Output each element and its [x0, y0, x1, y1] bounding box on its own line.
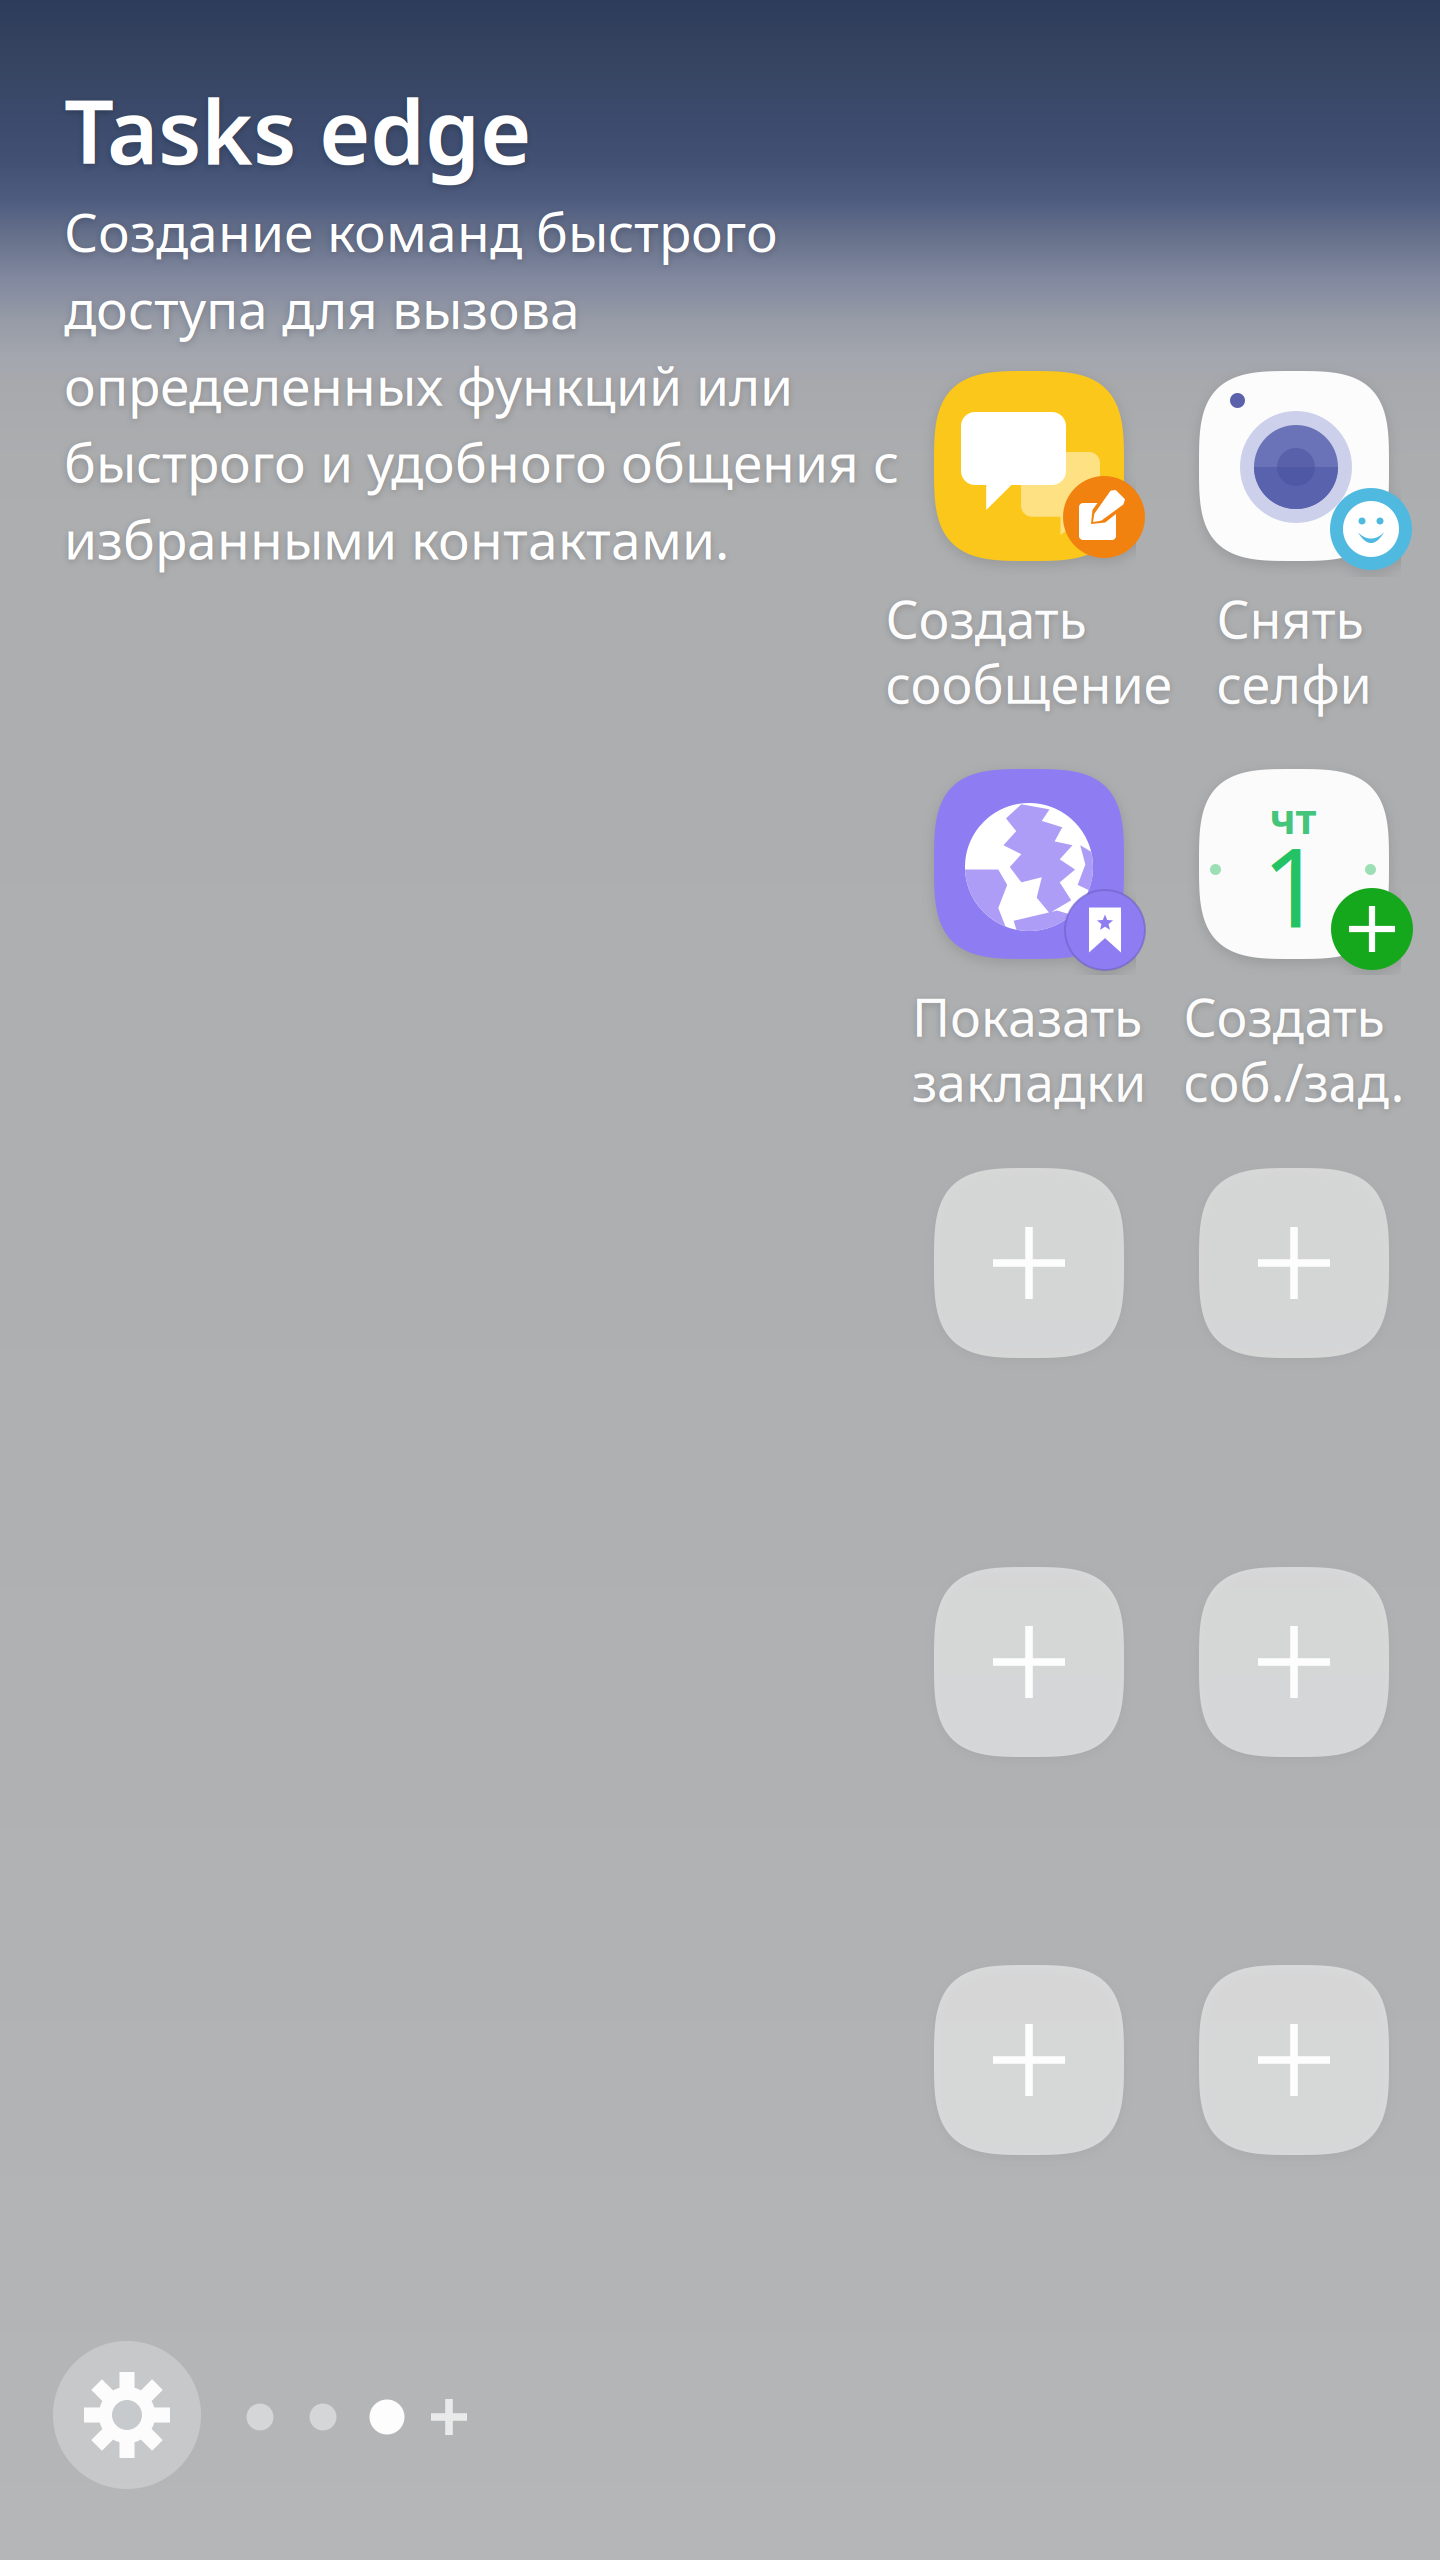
staticText: Создать соб./зад.	[1183, 982, 1404, 1116]
staticText: Снять селфи	[1216, 584, 1371, 718]
button[interactable]: Add shortcut	[934, 1168, 1124, 1358]
staticText: Создание команд быстрого доступа для выз…	[64, 196, 899, 574]
staticText: 1	[1261, 812, 1324, 958]
staticText: Показать закладки	[912, 982, 1146, 1116]
button[interactable]: Add shortcut	[934, 1567, 1124, 1757]
button[interactable]: Add shortcut	[1199, 1168, 1389, 1358]
staticText: чт	[1269, 791, 1316, 845]
button[interactable]: Add panel	[431, 2399, 467, 2435]
button[interactable]: Add shortcut	[934, 1965, 1124, 2155]
button[interactable]: Снять селфи	[1129, 371, 1440, 711]
staticText: Tasks edge	[64, 72, 531, 188]
button[interactable]: Add shortcut	[1199, 1965, 1389, 2155]
button[interactable]: Создать соб./зад.	[1129, 769, 1440, 1109]
button[interactable]: Add shortcut	[1199, 1567, 1389, 1757]
staticText: Создать сообщение	[885, 584, 1172, 718]
button[interactable]: Settings	[53, 2341, 201, 2489]
button[interactable]: Показать закладки	[864, 769, 1194, 1109]
button[interactable]: Создать сообщение	[864, 371, 1194, 711]
